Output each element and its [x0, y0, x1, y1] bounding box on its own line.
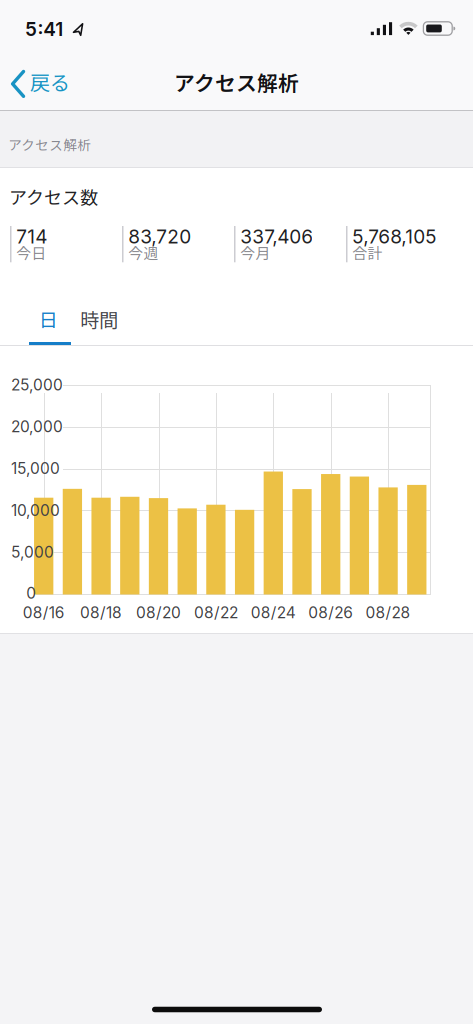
staticText: 714: [16, 225, 47, 248]
staticText: 今日: [16, 242, 46, 263]
staticText: 10,000: [11, 501, 60, 520]
staticText: 08/16: [23, 603, 65, 622]
staticText: 戻る: [30, 67, 70, 96]
staticText: 20,000: [11, 417, 63, 436]
staticText: 5,768,105: [352, 225, 436, 248]
staticText: 今週: [128, 242, 158, 263]
staticText: 337,406: [240, 225, 313, 248]
staticText: 5:41: [25, 17, 63, 40]
staticText: 5,000: [11, 543, 54, 561]
staticText: 83,720: [128, 225, 191, 248]
staticText: アクセス解析: [174, 67, 299, 97]
staticText: アクセス解析: [8, 134, 91, 154]
staticText: アクセス数: [9, 183, 98, 209]
staticText: 08/28: [366, 603, 411, 622]
staticText: 08/22: [194, 603, 238, 622]
staticText: 08/20: [136, 603, 181, 622]
staticText: 08/24: [251, 603, 296, 622]
staticText: 08/26: [308, 603, 353, 622]
staticText: 08/18: [80, 603, 122, 622]
staticText: 今月: [240, 242, 270, 263]
staticText: 日: [39, 305, 58, 332]
staticText: 0: [26, 584, 36, 602]
staticText: 合計: [352, 242, 382, 263]
staticText: 15,000: [11, 459, 60, 478]
staticText: 時間: [80, 305, 118, 333]
staticText: 25,000: [11, 375, 63, 394]
